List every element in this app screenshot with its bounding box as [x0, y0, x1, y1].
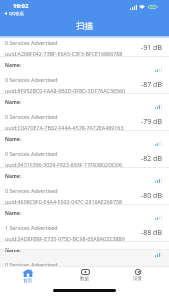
button[interactable]: Name: [0, 205, 169, 242]
staticText: 0 Services Advertised [5, 113, 58, 120]
staticText: -79 dB [141, 117, 162, 127]
staticText: -82 dB [141, 154, 162, 164]
staticText: 19:02 [13, 2, 29, 10]
staticText: Name: [5, 99, 21, 106]
button[interactable]: Name: [0, 168, 169, 205]
button[interactable]: 数据 [71, 266, 99, 286]
staticText: 0 Services Advertised [5, 150, 58, 157]
staticText: 0 Services Advertised [5, 76, 58, 83]
staticText: -87 dB [141, 80, 162, 90]
staticText: -91 dB [141, 43, 162, 53]
staticText: -88 dB [141, 228, 162, 238]
staticText: uuid:24D8FB8F-E735-975D-BC98-65A8A03238B… [5, 235, 125, 242]
staticText: 设置 [133, 276, 143, 282]
staticText: Name: [5, 247, 21, 254]
staticText: 0 Services Advertised [5, 261, 58, 266]
button[interactable]: 首页 [14, 266, 42, 286]
staticText: uuid:C0A70E7A-7B62-F44A-4578-7A72EA48916… [5, 124, 124, 131]
staticText: Name: [5, 173, 21, 180]
staticText: 0 Services Advertised [5, 39, 58, 46]
staticText: uuid:0431F396-3029-F923-893F-17F83802DD0… [5, 161, 122, 168]
staticText: Name: [5, 136, 21, 143]
button[interactable]: 设置 [124, 266, 152, 286]
other: 首页 [22, 269, 34, 277]
staticText: uuid:A268F042-73BF-E6A5-C3F3-BFCE1688678… [5, 50, 123, 57]
button[interactable]: Name: [0, 131, 169, 168]
staticText: 0 Services Advertised [5, 187, 58, 194]
staticText: Name: [5, 210, 21, 217]
button[interactable]: Name: [0, 94, 169, 131]
other: 设置 [134, 269, 142, 275]
button[interactable]: Name: [0, 36, 169, 57]
staticText: 数据 [80, 276, 90, 282]
staticText: 扫描 [76, 21, 94, 32]
other: 数据 [81, 269, 90, 275]
button[interactable]: Name: [0, 57, 169, 94]
staticText: uuid:8F952BC0-FAA8-9B2D-0F8D-3DF76AC3656… [5, 87, 126, 94]
staticText: uuid:4698C9F0-E4A4-F002-047C-2816AE26875… [5, 198, 122, 205]
staticText: 首页 [23, 278, 33, 284]
staticText: 1 Services Advertised [5, 224, 58, 231]
staticText: -80 dB [141, 191, 162, 201]
staticText: Name: [5, 62, 21, 69]
staticText: QQ音乐 [9, 11, 24, 17]
button[interactable]: Name: [0, 242, 169, 250]
